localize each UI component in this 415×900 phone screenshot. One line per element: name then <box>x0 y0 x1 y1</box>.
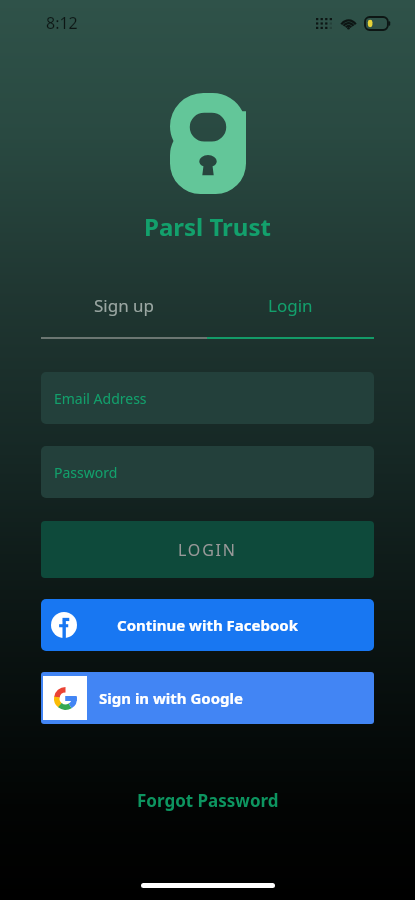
button[interactable]: Password <box>41 446 374 498</box>
button[interactable]: Email Address <box>41 372 374 424</box>
staticText: 8:12 <box>46 12 78 34</box>
staticText: Continue with Facebook <box>117 615 299 635</box>
staticText: Login <box>268 294 313 317</box>
staticText: LOGIN <box>178 539 237 561</box>
staticText: Password <box>54 463 118 482</box>
button[interactable]: LOGIN <box>41 521 374 578</box>
button[interactable]: Continue with Facebook <box>41 599 374 651</box>
staticText: Parsl Trust <box>144 210 271 243</box>
button[interactable]: Login <box>207 285 374 325</box>
button[interactable]: Sign in with Google <box>41 672 374 724</box>
staticText: Sign up <box>94 294 155 317</box>
button[interactable]: Sign up <box>41 285 207 325</box>
button[interactable]: Forgot Password <box>0 781 415 819</box>
staticText: Email Address <box>54 389 147 408</box>
staticText: Sign in with Google <box>99 688 244 708</box>
staticText: Forgot Password <box>137 789 279 812</box>
